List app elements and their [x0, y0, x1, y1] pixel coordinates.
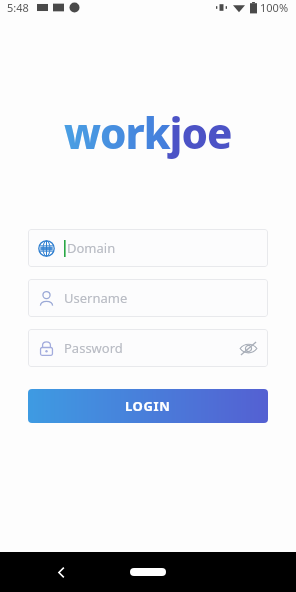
staticText: Password — [64, 339, 123, 357]
button[interactable]: Show password — [237, 337, 259, 359]
staticText: 100% — [260, 0, 289, 15]
staticText: Domain — [67, 239, 116, 257]
button[interactable]: Password — [28, 329, 268, 367]
staticText: 5:48 — [7, 0, 29, 15]
button[interactable]: Back — [48, 559, 74, 585]
button[interactable]: Home — [124, 561, 172, 583]
staticText: LOGIN — [125, 397, 171, 415]
staticText: workjoe — [64, 104, 232, 161]
button[interactable]: Domain — [28, 229, 268, 267]
staticText: Username — [64, 289, 128, 307]
button[interactable]: LOGIN — [28, 389, 268, 423]
button[interactable]: Username — [28, 279, 268, 317]
